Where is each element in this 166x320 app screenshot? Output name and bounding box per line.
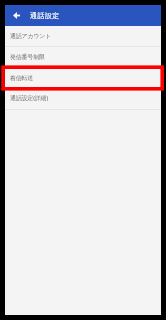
staticText: 着信転送 bbox=[10, 74, 34, 81]
button[interactable]: 通話設定(詳細) bbox=[5, 89, 161, 109]
staticText: 発信番号制限 bbox=[10, 53, 45, 60]
staticText: 通話アカウント bbox=[10, 32, 52, 39]
button[interactable]: 通話アカウント bbox=[5, 26, 161, 46]
button[interactable]: 着信転送 bbox=[5, 68, 161, 88]
staticText: 通話設定 bbox=[30, 11, 60, 20]
button[interactable]: 発信番号制限 bbox=[5, 47, 161, 67]
button[interactable]: Back bbox=[8, 7, 24, 23]
staticText: 通話設定(詳細) bbox=[10, 94, 49, 102]
